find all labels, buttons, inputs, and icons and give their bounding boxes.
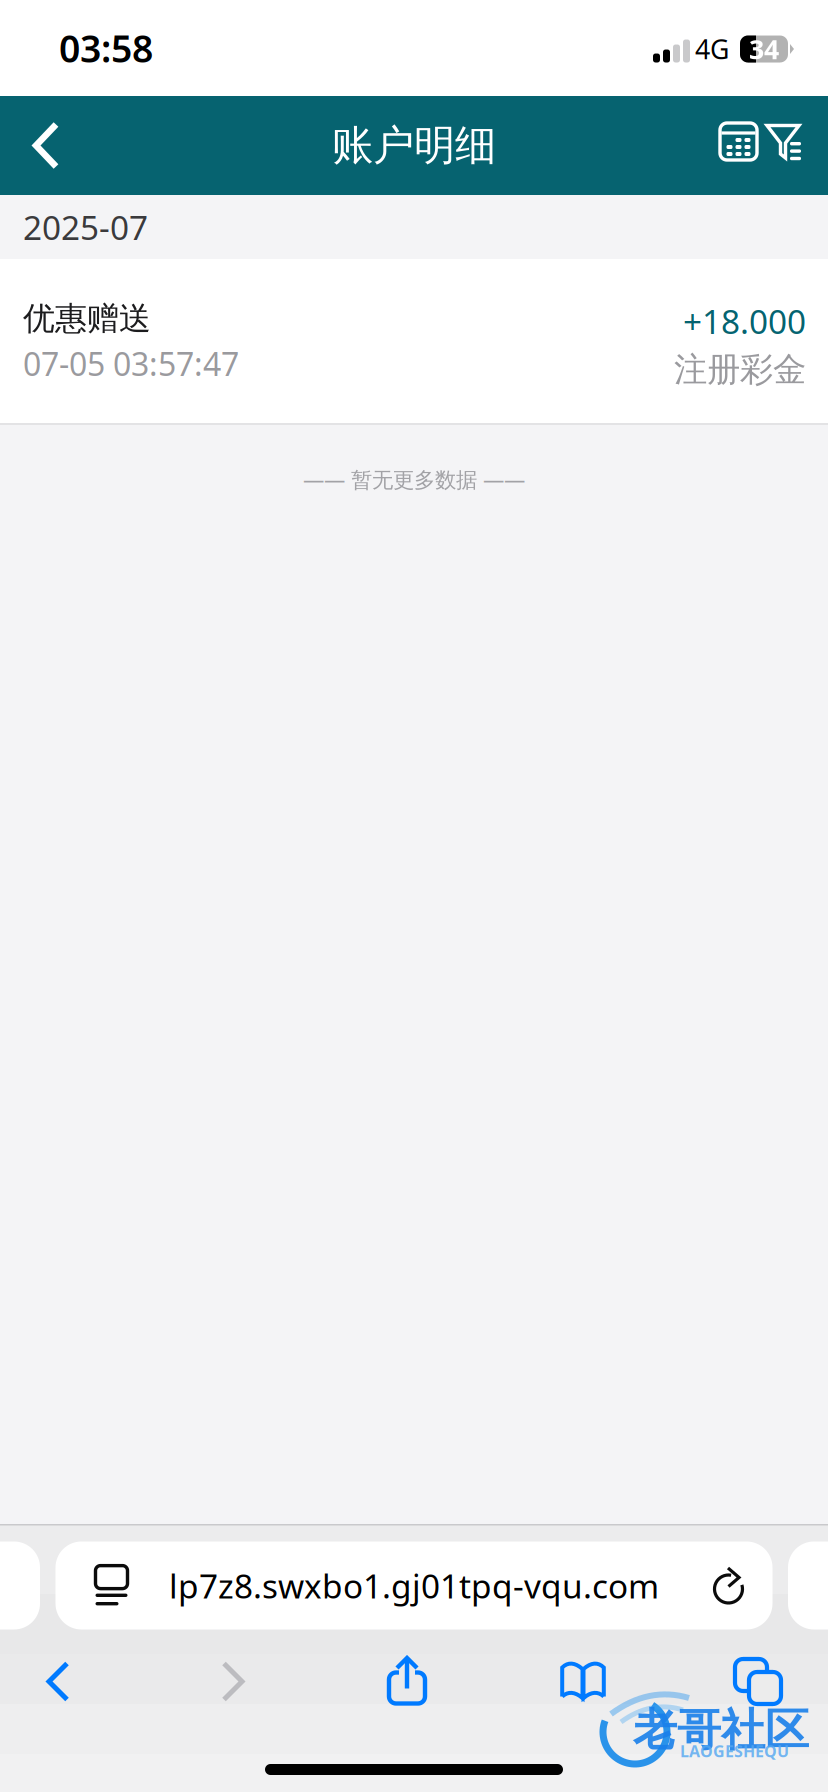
staticText: 07-05 03:57:47 — [23, 342, 239, 385]
button[interactable]: Back — [0, 1643, 116, 1719]
staticText: LAOGESHEQU — [680, 1740, 789, 1762]
button[interactable]: Calendar — [716, 96, 761, 195]
staticText: 账户明细 — [332, 120, 496, 171]
staticText: —— 暂无更多数据 —— — [303, 465, 525, 493]
staticText: 优惠赠送 — [23, 299, 151, 338]
staticText: 03:58 — [59, 23, 153, 73]
staticText: lp7z8.swxbo1.gj01tpq-vqu.com — [169, 1563, 659, 1608]
button[interactable]: Forward — [175, 1643, 291, 1719]
button[interactable]: Reload — [668, 1541, 772, 1629]
button[interactable]: Reader View — [55, 1541, 159, 1629]
button[interactable]: Tabs — [700, 1643, 816, 1719]
staticText: 4G — [695, 31, 729, 67]
button[interactable]: Filter — [761, 96, 805, 195]
button[interactable]: Share — [350, 1643, 466, 1719]
staticText: 2025-07 — [23, 205, 148, 249]
staticText: 老哥社区 — [633, 1703, 809, 1757]
button[interactable]: Bookmarks — [525, 1643, 641, 1719]
staticText: 注册彩金 — [674, 349, 806, 390]
staticText: 34 — [749, 31, 779, 67]
staticText: +18.000 — [683, 299, 806, 343]
button[interactable]: Back — [0, 96, 92, 195]
